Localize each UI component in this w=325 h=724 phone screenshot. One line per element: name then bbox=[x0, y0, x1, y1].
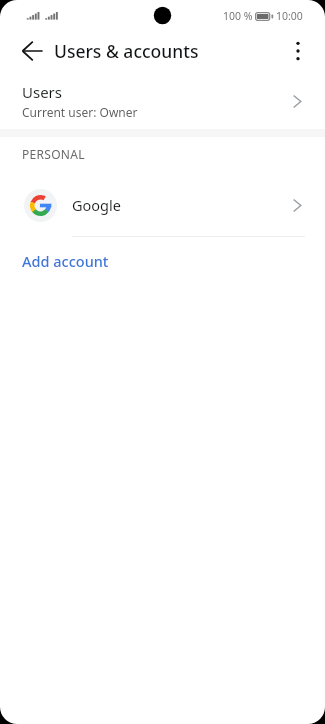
staticText: 10:00 bbox=[276, 9, 303, 23]
staticText: Users bbox=[22, 82, 62, 102]
staticText: Add account bbox=[22, 251, 109, 271]
button[interactable]: Google bbox=[0, 179, 325, 230]
button[interactable]: Add account bbox=[0, 244, 325, 278]
staticText: Users & accounts bbox=[54, 39, 199, 63]
staticText: 100 % bbox=[223, 9, 253, 23]
staticText: Current user: Owner bbox=[22, 104, 138, 120]
button[interactable]: Back bbox=[12, 31, 52, 71]
staticText: Google bbox=[72, 195, 121, 215]
button[interactable]: More options bbox=[278, 31, 318, 71]
staticText: PERSONAL bbox=[22, 146, 85, 162]
button[interactable]: Users bbox=[0, 74, 325, 128]
